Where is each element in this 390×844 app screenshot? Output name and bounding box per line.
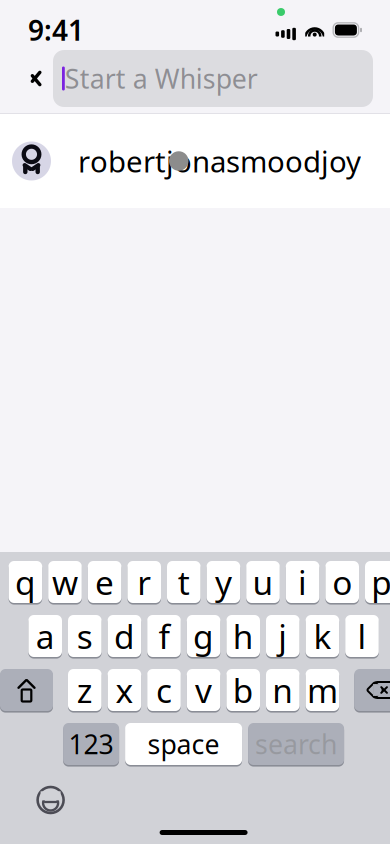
button[interactable]: r: [127, 560, 161, 604]
button[interactable]: z: [68, 668, 102, 712]
staticText: v: [195, 668, 212, 712]
button[interactable]: b: [226, 668, 260, 712]
staticText: e: [95, 560, 114, 604]
button[interactable]: i: [286, 560, 319, 604]
button[interactable]: x: [108, 668, 141, 712]
button[interactable]: w: [48, 560, 82, 604]
button[interactable]: m: [306, 668, 339, 712]
staticText: h: [233, 614, 254, 658]
button[interactable]: search: [248, 722, 344, 766]
staticText: search: [255, 726, 337, 762]
staticText: 123: [69, 726, 114, 762]
button[interactable]: 123: [63, 722, 119, 766]
button[interactable]: q: [9, 560, 42, 604]
button[interactable]: d: [108, 614, 141, 658]
button[interactable]: t: [167, 560, 201, 604]
staticText: d: [114, 614, 135, 658]
button[interactable]: h: [226, 614, 260, 658]
button[interactable]: a: [28, 614, 62, 658]
staticText: r: [137, 560, 151, 604]
button[interactable]: robertjonasmoodjoy: [0, 114, 390, 208]
staticText: i: [298, 560, 307, 604]
staticText: o: [332, 560, 352, 604]
staticText: u: [252, 560, 273, 604]
staticText: j: [278, 614, 287, 658]
staticText: w: [52, 560, 78, 604]
staticText: b: [233, 668, 254, 712]
button[interactable]: l: [345, 614, 379, 658]
staticText: space: [148, 726, 220, 762]
button[interactable]: f: [147, 614, 181, 658]
button[interactable]: p: [365, 560, 390, 604]
staticText: g: [193, 614, 214, 658]
staticText: n: [272, 668, 293, 712]
staticText: t: [178, 560, 190, 604]
button[interactable]: Shift: [0, 668, 53, 712]
staticText: q: [15, 560, 36, 604]
button[interactable]: g: [187, 614, 220, 658]
button[interactable]: e: [88, 560, 121, 604]
button[interactable]: Delete: [354, 668, 390, 712]
button[interactable]: j: [266, 614, 300, 658]
staticText: z: [77, 668, 93, 712]
button[interactable]: c: [147, 668, 181, 712]
staticText: y: [215, 560, 232, 604]
button[interactable]: Emoji: [29, 778, 73, 822]
staticText: p: [371, 560, 390, 604]
staticText: f: [158, 614, 169, 658]
button[interactable]: space: [125, 722, 242, 766]
staticText: 9:41: [28, 11, 84, 49]
staticText: l: [357, 614, 366, 658]
staticText: k: [313, 614, 331, 658]
staticText: m: [307, 668, 338, 712]
staticText: Start a Whisper: [65, 61, 258, 96]
button[interactable]: n: [266, 668, 300, 712]
button[interactable]: y: [207, 560, 240, 604]
button[interactable]: v: [187, 668, 220, 712]
button[interactable]: u: [246, 560, 280, 604]
button[interactable]: o: [325, 560, 359, 604]
staticText: x: [115, 668, 133, 712]
staticText: robertjonasmoodjoy: [78, 141, 361, 180]
staticText: s: [77, 614, 93, 658]
button[interactable]: Back: [7, 53, 53, 103]
button[interactable]: s: [68, 614, 102, 658]
staticText: c: [156, 668, 172, 712]
button[interactable]: Start a Whisper: [53, 50, 373, 107]
staticText: a: [36, 614, 55, 658]
button[interactable]: k: [306, 614, 339, 658]
